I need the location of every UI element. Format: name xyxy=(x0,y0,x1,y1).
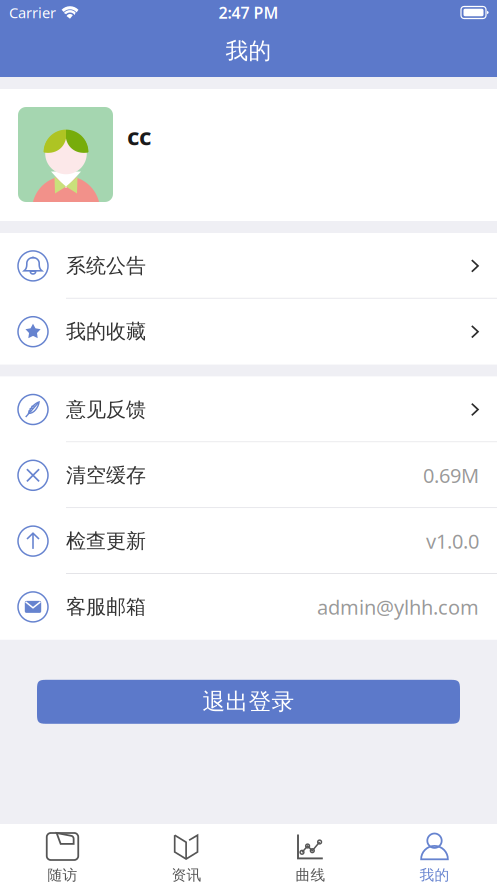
staticText: v1.0.0 xyxy=(426,528,479,554)
staticText: admin@ylhh.com xyxy=(317,594,479,620)
staticText: 检查更新 xyxy=(66,529,146,553)
staticText: 我的 xyxy=(419,866,449,883)
button[interactable]: 我的 xyxy=(372,824,496,883)
staticText: 随访 xyxy=(47,866,77,883)
button[interactable]: 清空缓存 xyxy=(0,442,497,508)
button[interactable]: 资讯 xyxy=(124,824,248,883)
staticText: 我的 xyxy=(225,37,271,65)
button[interactable]: 我的收藏 xyxy=(0,299,497,365)
staticText: 资讯 xyxy=(171,866,201,883)
staticText: 曲线 xyxy=(295,866,325,883)
button[interactable]: 退出登录 xyxy=(37,680,460,724)
staticText: 客服邮箱 xyxy=(66,595,146,619)
button[interactable]: 随访 xyxy=(0,824,124,883)
staticText: 2:47 PM xyxy=(218,2,278,23)
staticText: 意见反馈 xyxy=(66,397,146,422)
button[interactable]: 检查更新 xyxy=(0,508,497,574)
staticText: 我的收藏 xyxy=(66,319,146,344)
button[interactable]: 曲线 xyxy=(248,824,372,883)
staticText: cc xyxy=(127,120,151,152)
staticText: 0.69M xyxy=(423,462,479,489)
button[interactable]: 意见反馈 xyxy=(0,377,497,442)
staticText: 退出登录 xyxy=(202,688,294,716)
button[interactable]: 系统公告 xyxy=(0,233,497,299)
staticText: 清空缓存 xyxy=(66,463,146,488)
staticText: 系统公告 xyxy=(66,254,146,278)
button[interactable]: 客服邮箱 xyxy=(0,574,497,640)
staticText: Carrier xyxy=(9,3,56,22)
